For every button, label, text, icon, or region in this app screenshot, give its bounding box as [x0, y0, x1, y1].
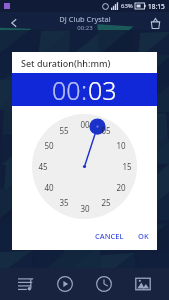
staticText: 00 — [80, 119, 90, 130]
button[interactable]: Gallery — [130, 271, 156, 297]
button[interactable]: Play — [52, 271, 78, 297]
staticText: 15 — [122, 161, 132, 172]
staticText: 25 — [101, 197, 111, 208]
staticText: 35 — [59, 197, 69, 208]
staticText: 00:23 — [77, 24, 93, 32]
staticText: DJ Club Crystal — [59, 14, 111, 24]
staticText: Set duration(hh:mm) — [21, 57, 111, 69]
button[interactable]: OK — [130, 229, 157, 243]
staticText: 20 — [116, 182, 126, 193]
button[interactable]: Cart — [147, 15, 163, 31]
button[interactable]: Timer — [91, 271, 117, 297]
staticText: 55 — [59, 125, 69, 136]
staticText: 10 — [116, 140, 126, 151]
staticText: 50 — [44, 140, 54, 151]
staticText: 40 — [44, 182, 54, 193]
staticText: CANCEL — [95, 231, 124, 241]
staticText: OK — [138, 231, 149, 241]
staticText: 30 — [80, 203, 90, 214]
staticText: 63% — [121, 2, 133, 10]
staticText: 05 — [101, 125, 111, 136]
staticText: : — [81, 73, 88, 106]
staticText: 03 — [88, 73, 117, 106]
staticText: 45 — [38, 161, 48, 172]
button[interactable]: CANCEL — [89, 229, 130, 243]
button[interactable]: 03 — [88, 73, 117, 106]
button[interactable]: Playlist — [13, 271, 39, 297]
staticText: 00 — [52, 73, 81, 106]
button[interactable]: 00 — [52, 73, 81, 106]
staticText: 18:15 — [148, 2, 165, 11]
button[interactable]: 00 — [32, 114, 137, 219]
button[interactable]: Back — [6, 15, 22, 31]
